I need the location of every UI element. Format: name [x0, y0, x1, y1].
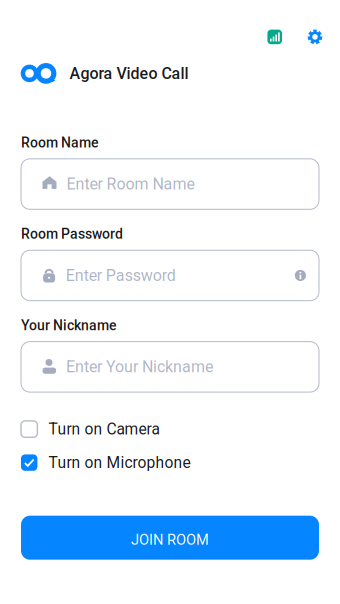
staticText: Enter Room Name [66, 175, 194, 193]
staticText: Enter Your Nickname [66, 357, 213, 376]
staticText: Your Nickname [21, 317, 116, 334]
button[interactable]: Turn on Microphone [21, 452, 319, 474]
button[interactable]: Settings [307, 29, 322, 44]
staticText: Room Password [21, 226, 123, 242]
button[interactable]: Enter Your Nickname [21, 342, 319, 392]
button[interactable]: Network quality [267, 30, 282, 44]
staticText: Turn on Camera [48, 420, 159, 438]
button[interactable]: Turn on Camera [21, 418, 319, 440]
button[interactable]: JOIN ROOM [21, 516, 319, 560]
staticText: Room Name [21, 134, 98, 151]
staticText: JOIN ROOM [131, 531, 209, 548]
staticText: Agora Video Call [69, 64, 188, 83]
staticText: Enter Password [66, 266, 176, 285]
button[interactable]: Enter Room Name [21, 159, 319, 209]
staticText: Turn on Microphone [48, 453, 190, 472]
button[interactable]: Enter Password [21, 250, 319, 301]
